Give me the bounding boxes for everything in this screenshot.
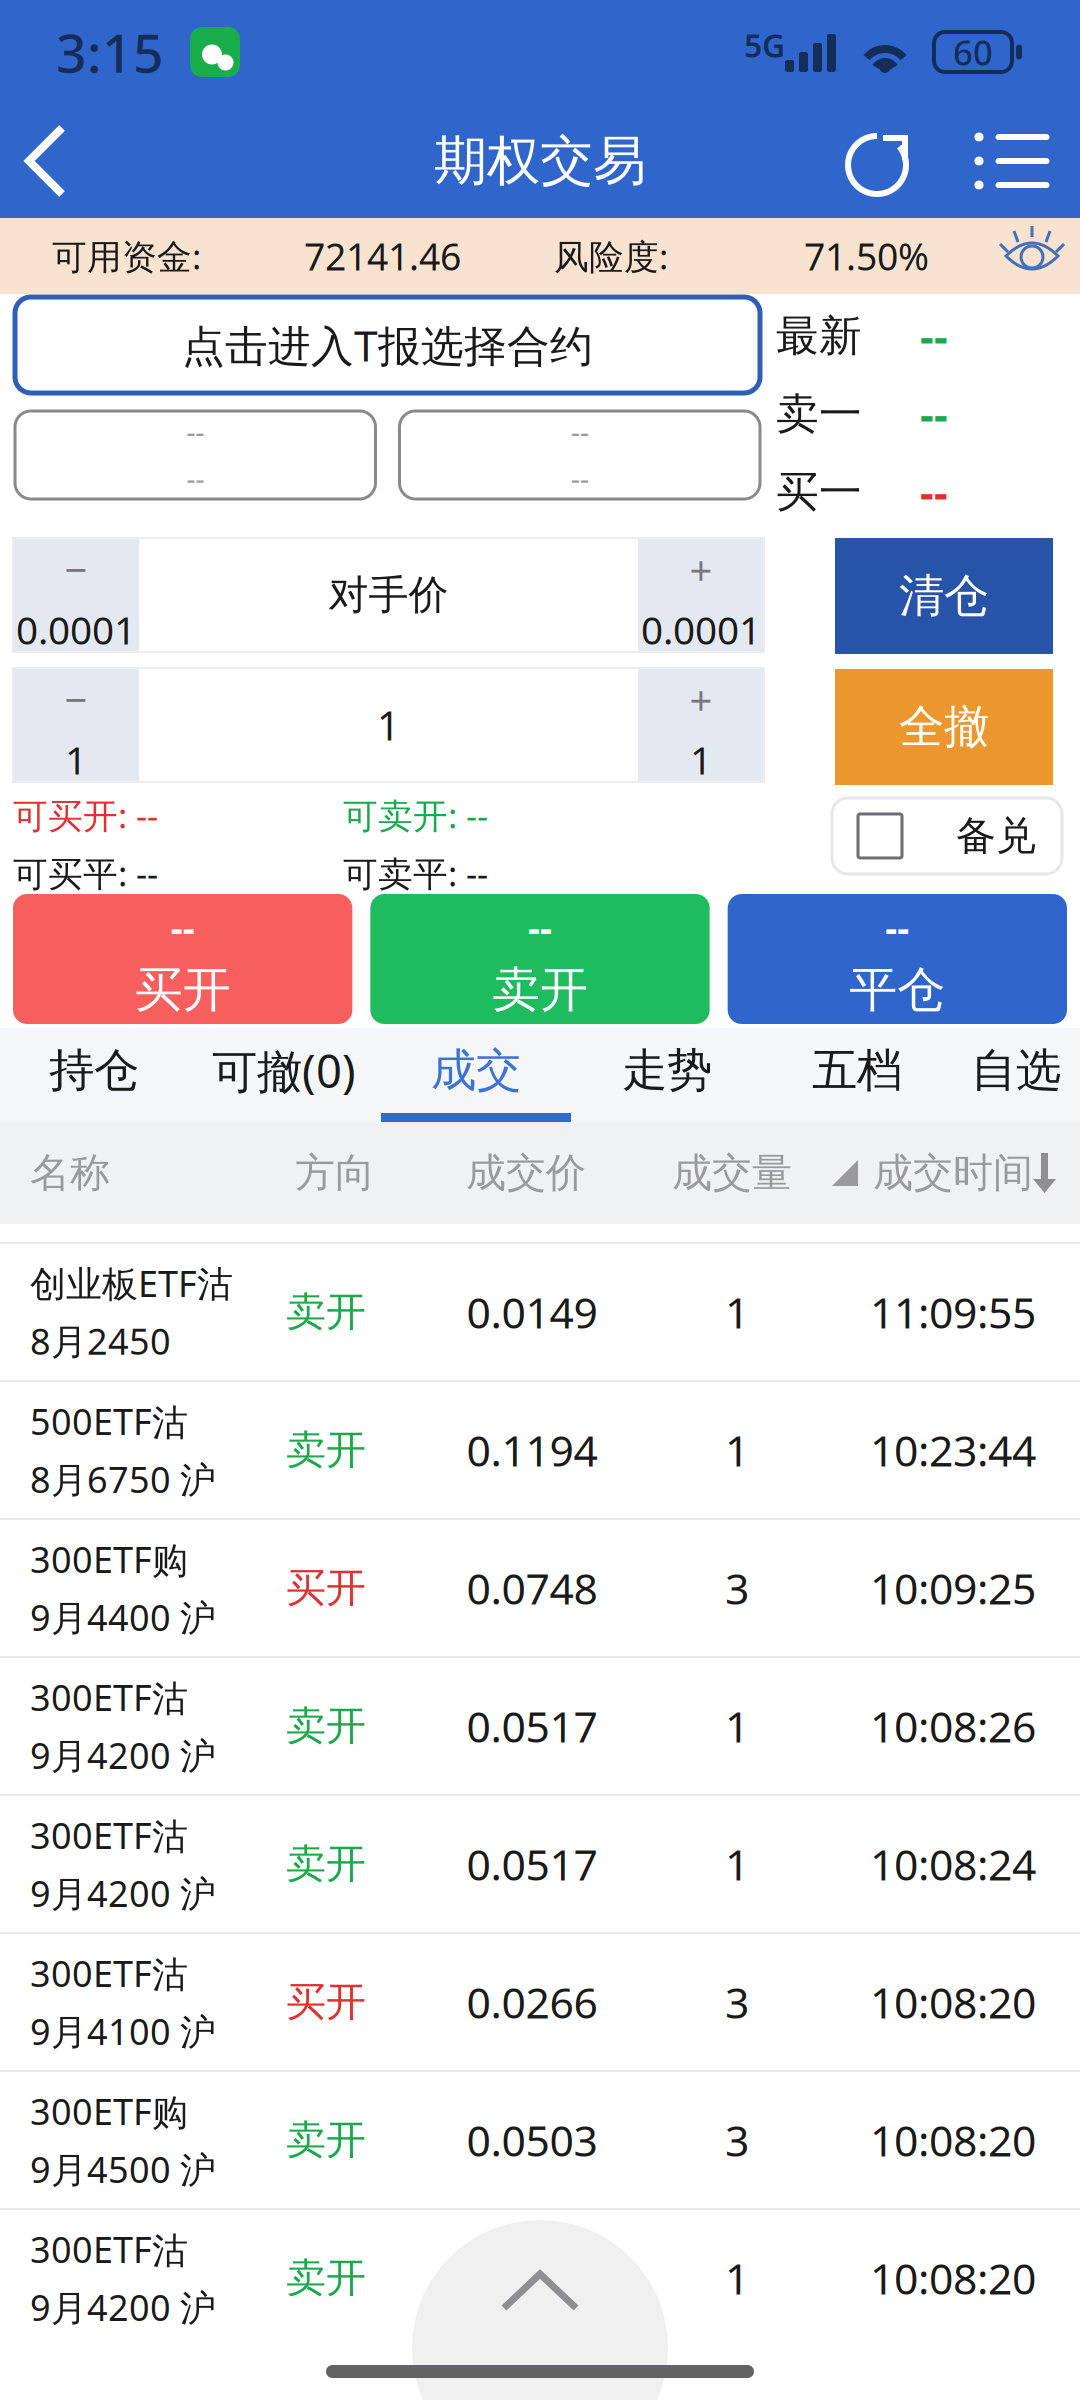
button[interactable]: Expand list <box>412 2220 668 2348</box>
staticText: 点击进入T报选择合约 <box>182 317 593 373</box>
staticText: 创业板ETF沽 <box>30 1259 233 1307</box>
staticText: 1 <box>377 698 400 751</box>
staticText: 可撤(0) <box>212 1040 356 1101</box>
staticText: 可卖平: -- <box>343 850 488 896</box>
staticText: 10:23:44 <box>870 1422 1036 1478</box>
staticText: 1 <box>65 734 87 785</box>
staticText: 300ETF购 <box>30 2087 188 2135</box>
staticText: 卖开 <box>286 1425 366 1474</box>
button[interactable]: Menu <box>960 104 1064 218</box>
staticText: 对手价 <box>328 570 448 619</box>
staticText: 0.0266 <box>466 1974 597 2030</box>
staticText: 0.1194 <box>466 1422 597 1478</box>
button[interactable]: 300ETF购 <box>0 2070 1080 2208</box>
staticText: 10:08:20 <box>870 2112 1036 2168</box>
staticText: -- <box>171 903 195 952</box>
staticText: 全撤 <box>899 699 989 755</box>
staticText: 500ETF沽 <box>30 1397 188 1445</box>
staticText: -- <box>920 464 948 520</box>
button[interactable]: Back <box>0 104 104 218</box>
button[interactable]: Decrease <box>13 538 139 652</box>
staticText: 卖一 <box>776 388 862 440</box>
button[interactable]: 备兑 <box>832 798 1062 874</box>
staticText: 自选 <box>971 1043 1061 1098</box>
button[interactable]: 创业板ETF沽 <box>0 1242 1080 1380</box>
staticText: 300ETF沽 <box>30 1811 188 1859</box>
staticText: 10:08:26 <box>870 1698 1036 1754</box>
button[interactable]: 清仓 <box>835 538 1053 654</box>
button[interactable]: 500ETF沽 <box>0 1380 1080 1518</box>
staticText: 平仓 <box>849 960 945 1019</box>
button[interactable]: 可撤(0) <box>188 1028 380 1122</box>
button[interactable]: 成交 <box>380 1028 572 1122</box>
staticText: 300ETF沽 <box>30 1673 188 1721</box>
button[interactable]: 自选 <box>952 1028 1080 1122</box>
staticText: 1 <box>725 1422 749 1478</box>
staticText: 0.0748 <box>466 1560 597 1616</box>
staticText: 风险度: <box>554 233 668 279</box>
staticText: 可买开: -- <box>13 792 158 838</box>
button[interactable]: Decrease <box>13 668 139 782</box>
staticText: 0.0503 <box>466 2112 597 2168</box>
staticText: 3:15 <box>56 17 164 87</box>
staticText: 0.0517 <box>466 1836 597 1892</box>
staticText: 8月6750 沪 <box>30 1455 216 1503</box>
staticText: − <box>64 673 87 726</box>
button[interactable]: 走势 <box>572 1028 762 1122</box>
staticText: 0.0149 <box>466 1284 597 1340</box>
staticText: 10:09:25 <box>870 1560 1036 1616</box>
staticText: 9月4400 沪 <box>30 1593 216 1641</box>
staticText: 卖开 <box>286 1287 366 1336</box>
button[interactable]: Increase <box>638 668 764 782</box>
staticText: 买一 <box>776 466 862 518</box>
staticText: 0.0001 <box>16 604 136 655</box>
staticText: -- <box>571 412 589 451</box>
button[interactable]: 300ETF购 <box>0 1518 1080 1656</box>
staticText: 1 <box>690 734 712 785</box>
button[interactable]: -- <box>728 894 1067 1024</box>
button[interactable]: Increase <box>638 538 764 652</box>
staticText: 卖开 <box>286 2253 366 2302</box>
staticText: 60 <box>953 29 993 75</box>
staticText: 1 <box>725 1836 749 1892</box>
button[interactable]: 全撤 <box>835 669 1053 785</box>
staticText: 300ETF购 <box>30 1535 188 1583</box>
button[interactable]: Refresh <box>824 104 934 218</box>
staticText: 期权交易 <box>434 128 646 194</box>
button[interactable]: 五档 <box>762 1028 952 1122</box>
button[interactable]: 持仓 <box>0 1028 188 1122</box>
button[interactable]: 300ETF沽 <box>0 1794 1080 1932</box>
button[interactable]: 300ETF沽 <box>0 1656 1080 1794</box>
staticText: 可用资金: <box>52 233 201 279</box>
button[interactable]: Toggle balance visibility <box>990 218 1074 294</box>
staticText: 持仓 <box>49 1043 139 1098</box>
staticText: 可买平: -- <box>13 850 158 896</box>
staticText: 卖开 <box>492 960 588 1019</box>
button[interactable]: 点击进入T报选择合约 <box>15 297 760 393</box>
staticText: -- <box>571 459 589 498</box>
staticText: 卖开 <box>286 1701 366 1750</box>
staticText: 3 <box>725 1560 749 1616</box>
staticText: 买开 <box>286 1977 366 2026</box>
staticText: 成交价 <box>466 1148 586 1197</box>
staticText: -- <box>920 308 948 364</box>
staticText: 名称 <box>30 1148 110 1197</box>
staticText: 五档 <box>812 1043 902 1098</box>
staticText: 10:08:20 <box>870 2250 1036 2306</box>
button[interactable]: 300ETF沽 <box>0 1932 1080 2070</box>
staticText: -- <box>186 459 204 498</box>
button[interactable]: -- <box>370 894 710 1024</box>
staticText: 9月4100 沪 <box>30 2007 216 2055</box>
button[interactable]: -- <box>13 894 352 1024</box>
staticText: + <box>689 543 712 596</box>
staticText: 11:09:55 <box>870 1284 1036 1340</box>
staticText: 成交时间 <box>873 1148 1033 1197</box>
staticText: 72141.46 <box>304 231 461 281</box>
staticText: 可卖开: -- <box>343 792 488 838</box>
button[interactable]: 300ETF沽 <box>0 2208 1080 2346</box>
staticText: 买开 <box>135 960 231 1019</box>
staticText: 买开 <box>286 1563 366 1612</box>
staticText: 方向 <box>295 1148 375 1197</box>
staticText: 3 <box>725 1974 749 2030</box>
staticText: 1 <box>725 1284 749 1340</box>
